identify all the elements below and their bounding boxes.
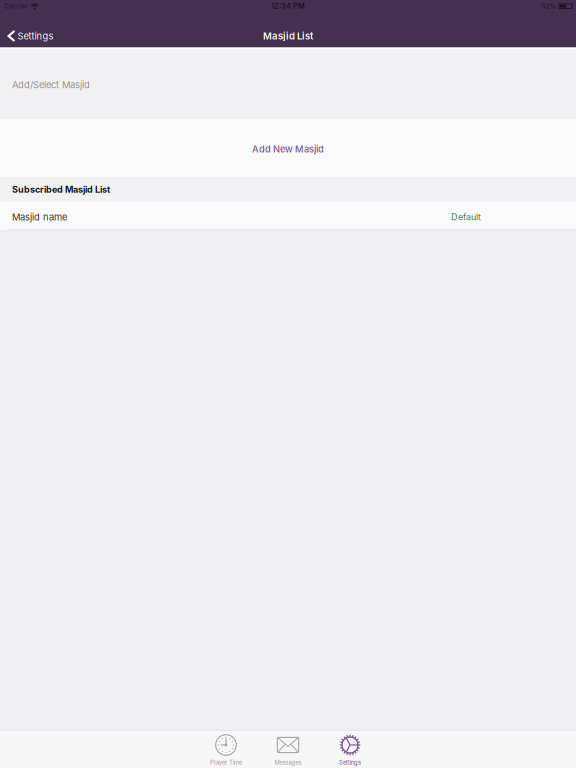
staticText: Settings [339, 759, 361, 766]
staticText: Default [451, 211, 481, 222]
button[interactable]: Settings [319, 730, 381, 768]
button[interactable]: Settings [0, 23, 61, 49]
staticText: Settings [17, 30, 53, 42]
staticText: 52% [541, 2, 556, 10]
staticText: Masjid List [263, 30, 313, 42]
button[interactable]: Add New Masjid [0, 119, 576, 177]
staticText: Messages [274, 759, 301, 766]
button[interactable]: Messages [257, 730, 319, 768]
staticText: Masjid name [12, 211, 67, 223]
staticText: 12:34 PM [271, 2, 305, 10]
staticText: Add/Select Masjid [12, 79, 90, 90]
button[interactable]: Prayer Time [195, 730, 257, 768]
staticText: Subscribed Masjid List [12, 184, 110, 195]
staticText: Add New Masjid [252, 143, 324, 155]
button[interactable]: Masjid name [0, 202, 576, 230]
staticText: Prayer Time [210, 759, 242, 766]
staticText: Carrier [4, 2, 28, 10]
